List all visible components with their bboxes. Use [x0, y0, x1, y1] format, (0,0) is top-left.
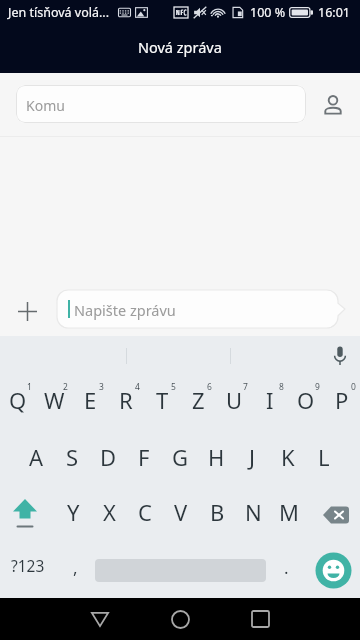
button[interactable]: Napište zprávu — [57, 290, 345, 328]
staticText: V — [174, 497, 188, 527]
staticText: D — [100, 442, 117, 472]
staticText: T — [156, 385, 169, 415]
staticText: 0 — [351, 381, 356, 393]
staticText: ?123 — [11, 555, 45, 576]
staticText: P — [335, 385, 349, 415]
button[interactable]: Voice input — [325, 336, 355, 375]
staticText: Q — [9, 385, 27, 415]
staticText: I — [266, 385, 274, 415]
button[interactable]: Emoji — [306, 543, 360, 598]
button[interactable]: Komu — [16, 85, 306, 123]
staticText: 2 — [63, 381, 68, 393]
button[interactable] — [95, 543, 266, 598]
button[interactable]: 4 — [108, 375, 144, 431]
staticText: Napište zprávu — [74, 300, 176, 320]
staticText: L — [318, 442, 330, 472]
staticText: R — [119, 385, 133, 415]
staticText: Nová zpráva — [138, 37, 222, 57]
staticText: , — [73, 556, 78, 579]
button[interactable]: G — [162, 431, 198, 487]
button[interactable]: Y — [55, 487, 91, 543]
button[interactable]: H — [198, 431, 234, 487]
staticText: 9 — [315, 381, 320, 393]
button[interactable]: Backspace — [306, 487, 360, 543]
staticText: Komu — [26, 96, 65, 115]
button[interactable]: F — [126, 431, 162, 487]
staticText: E — [84, 385, 97, 415]
staticText: 5 — [171, 381, 176, 393]
staticText: 8 — [279, 381, 284, 393]
staticText: 4 — [135, 381, 140, 393]
button[interactable]: D — [90, 431, 126, 487]
button[interactable]: C — [127, 487, 163, 543]
staticText: B — [210, 497, 225, 527]
button[interactable]: Add attachment — [10, 294, 44, 328]
button[interactable]: Recent apps — [230, 598, 290, 640]
staticText: Z — [192, 385, 205, 415]
button[interactable]: 1 — [0, 375, 36, 431]
button[interactable]: K — [270, 431, 306, 487]
staticText: 1 — [27, 381, 32, 393]
button[interactable]: B — [199, 487, 235, 543]
button[interactable]: Back — [70, 598, 130, 640]
button[interactable]: 9 — [288, 375, 324, 431]
staticText: 6 — [207, 381, 212, 393]
button[interactable]: 5 — [144, 375, 180, 431]
staticText: 3 — [99, 381, 104, 393]
staticText: N — [245, 497, 262, 527]
staticText: M — [279, 497, 299, 527]
button[interactable]: 2 — [36, 375, 72, 431]
button[interactable]: N — [235, 487, 271, 543]
staticText: F — [138, 442, 150, 472]
button[interactable]: 8 — [252, 375, 288, 431]
button[interactable]: A — [18, 431, 54, 487]
button[interactable]: Choose contact — [316, 88, 350, 122]
staticText: W — [44, 385, 65, 415]
staticText: C — [138, 497, 152, 527]
staticText: 16:01 — [318, 4, 350, 21]
staticText: 100 % — [250, 4, 286, 21]
button[interactable]: Shift — [0, 487, 54, 543]
button[interactable]: J — [234, 431, 270, 487]
button[interactable]: ?123 — [0, 543, 55, 598]
button[interactable]: Home — [150, 598, 210, 640]
button[interactable]: M — [271, 487, 307, 543]
staticText: . — [284, 556, 289, 579]
button[interactable]: S — [54, 431, 90, 487]
button[interactable]: L — [306, 431, 342, 487]
staticText: J — [249, 442, 256, 472]
staticText: Jen tísňová volá... — [8, 4, 110, 21]
staticText: 7 — [243, 381, 248, 393]
button[interactable]: . — [266, 543, 306, 598]
button[interactable]: 0 — [324, 375, 360, 431]
button[interactable]: , — [55, 543, 95, 598]
staticText: S — [66, 442, 79, 472]
staticText: K — [281, 442, 295, 472]
button[interactable]: 6 — [180, 375, 216, 431]
staticText: O — [297, 385, 315, 415]
staticText: G — [172, 442, 189, 472]
staticText: A — [29, 442, 44, 472]
staticText: U — [226, 385, 243, 415]
button[interactable]: 3 — [72, 375, 108, 431]
staticText: H — [208, 442, 225, 472]
staticText: X — [103, 497, 116, 527]
button[interactable]: V — [163, 487, 199, 543]
button[interactable]: X — [91, 487, 127, 543]
button[interactable]: 7 — [216, 375, 252, 431]
staticText: Y — [67, 497, 80, 527]
